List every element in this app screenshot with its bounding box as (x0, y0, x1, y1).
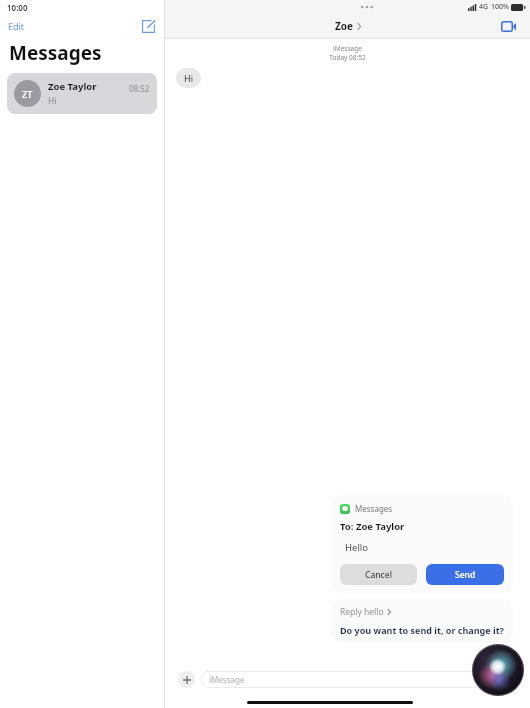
staticText: Zoe Taylor (48, 80, 97, 93)
button[interactable]: Add attachment (178, 671, 195, 688)
staticText: Hi (48, 95, 57, 107)
button[interactable]: iMessage (201, 671, 517, 688)
staticText: Hello (345, 541, 369, 554)
staticText: To: Zoe Taylor (340, 520, 405, 533)
staticText: Do you want to send it, or change it? (340, 624, 504, 636)
staticText: Hi (184, 72, 193, 84)
staticText: 4G (479, 2, 489, 12)
staticText: Zoe (335, 19, 354, 33)
staticText: Cancel (365, 569, 392, 581)
staticText: Messages (355, 503, 393, 514)
staticText: 08:52 (129, 83, 150, 94)
button[interactable]: Hi (176, 68, 201, 88)
staticText: Today 08:52 (165, 53, 530, 62)
staticText: Edit (8, 20, 25, 32)
staticText: iMessage (165, 44, 530, 53)
button[interactable]: ZT (7, 73, 157, 114)
button[interactable]: Edit (4, 18, 29, 34)
staticText: 100% (491, 2, 509, 12)
button[interactable]: Cancel (340, 564, 417, 585)
staticText: Messages (9, 40, 102, 66)
button[interactable]: Siri (472, 644, 524, 696)
staticText: Send (455, 569, 476, 581)
button[interactable]: Zoe (331, 17, 365, 35)
staticText: 10:00 (7, 2, 28, 13)
staticText: Reply hello (340, 606, 384, 618)
button[interactable]: Reply hello (331, 599, 513, 643)
staticText: iMessage (209, 674, 245, 685)
button[interactable]: FaceTime video call (498, 16, 518, 36)
button[interactable]: Compose new message (139, 17, 157, 35)
button[interactable]: Send (426, 564, 504, 585)
staticText: ZT (22, 88, 33, 100)
